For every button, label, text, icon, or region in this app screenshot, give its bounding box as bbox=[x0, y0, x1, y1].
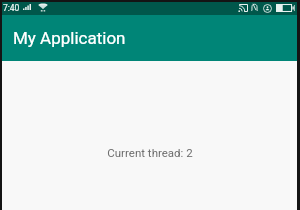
other: Cast bbox=[238, 4, 248, 12]
staticText: 7:40 bbox=[3, 3, 20, 13]
staticText: My Application bbox=[13, 28, 126, 48]
staticText: Current thread: 2 bbox=[107, 146, 193, 159]
button[interactable]: My Application bbox=[2, 15, 297, 61]
